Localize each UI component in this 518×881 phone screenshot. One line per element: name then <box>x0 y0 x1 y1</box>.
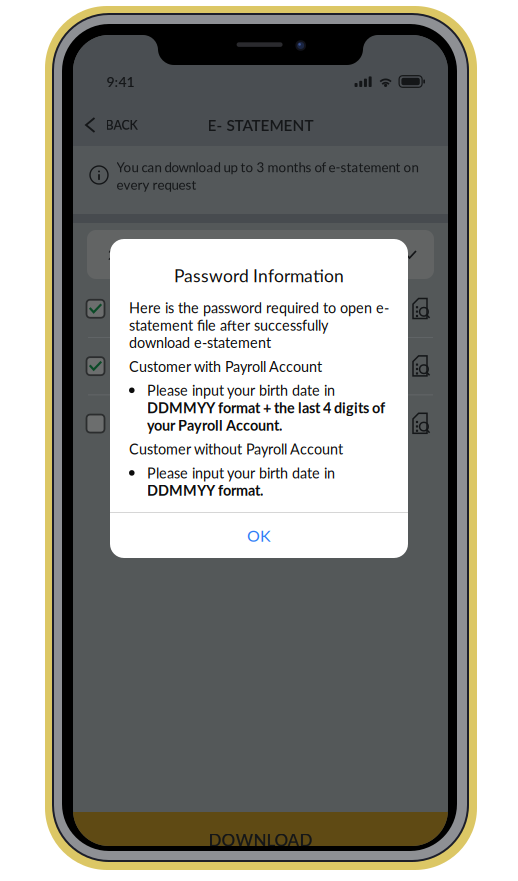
staticText: DDMMYY format. <box>147 482 263 499</box>
staticText: OK <box>247 526 271 545</box>
button[interactable]: DOWNLOAD <box>73 812 448 852</box>
button[interactable] <box>73 338 448 394</box>
staticText: 9:41 <box>106 73 134 90</box>
staticText: Customer without Payroll Account <box>129 440 343 458</box>
staticText: 2024 <box>108 246 140 262</box>
staticText: You can download up to 3 months of e-sta… <box>116 159 418 175</box>
staticText: your Payroll Account. <box>147 416 282 434</box>
staticText: DDMMYY format + the last 4 digits of <box>147 399 385 416</box>
staticText: every request <box>116 176 196 192</box>
staticText: BACK <box>105 118 137 132</box>
staticText: Please input your birth date in <box>147 382 335 399</box>
staticText: Password Information <box>174 265 344 286</box>
staticText: DOWNLOAD <box>208 830 312 850</box>
staticText: Customer with Payroll Account <box>129 358 322 375</box>
button[interactable] <box>73 395 448 452</box>
button[interactable]: BACK <box>73 106 151 144</box>
button[interactable] <box>73 280 448 337</box>
button[interactable]: 2024 <box>87 230 434 279</box>
staticText: download e-statement <box>129 334 271 351</box>
staticText: Here is the password required to open e- <box>129 299 389 316</box>
button[interactable]: OK <box>110 513 408 558</box>
staticText: statement file after successfully <box>129 316 328 334</box>
staticText: Please input your birth date in <box>147 464 335 482</box>
staticText: E- STATEMENT <box>207 116 313 134</box>
